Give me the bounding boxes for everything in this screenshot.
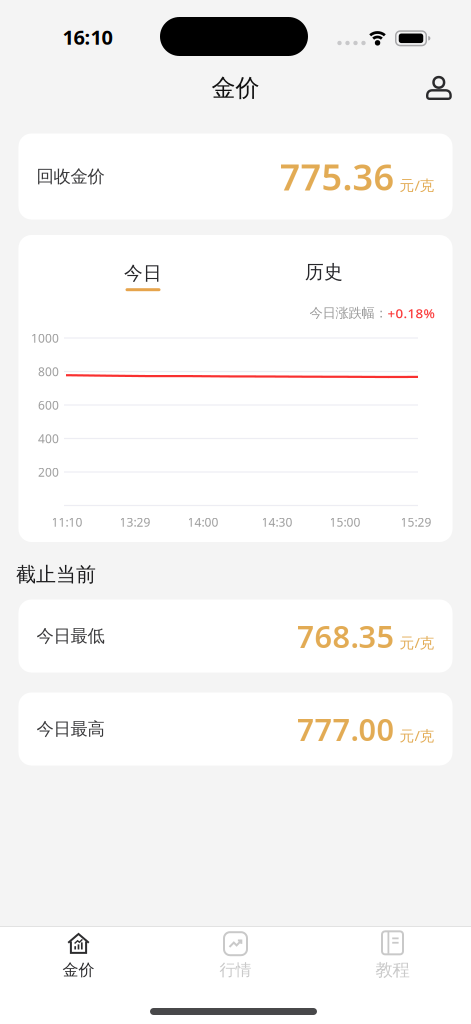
staticText: 元/克 <box>399 633 434 652</box>
staticText: 400 <box>38 430 59 446</box>
staticText: 13:29 <box>119 514 150 530</box>
staticText: 15:29 <box>400 514 431 530</box>
button[interactable]: 历史 <box>279 246 369 298</box>
button[interactable]: 今日 <box>98 250 188 302</box>
button[interactable]: 行情 <box>157 923 314 989</box>
staticText: 元/克 <box>399 175 434 195</box>
staticText: 回收金价 <box>36 166 104 187</box>
button[interactable]: 今日最高 <box>18 692 452 765</box>
staticText: 今日涨跌幅： <box>309 305 387 321</box>
staticText: +0.18% <box>387 304 434 322</box>
staticText: 14:00 <box>187 514 218 530</box>
staticText: 金价 <box>211 73 259 103</box>
staticText: 15:00 <box>329 514 360 530</box>
staticText: 11:10 <box>51 514 82 530</box>
staticText: 800 <box>38 363 59 379</box>
button[interactable] <box>419 65 459 105</box>
button[interactable]: 今日最低 <box>18 599 452 672</box>
staticText: 截止当前 <box>16 562 96 587</box>
staticText: 元/克 <box>399 726 434 745</box>
staticText: 今日最高 <box>36 718 104 740</box>
button[interactable]: 金价 <box>0 923 157 989</box>
button[interactable]: 回收金价 <box>18 133 452 219</box>
staticText: 16:10 <box>62 24 112 50</box>
staticText: 历史 <box>305 260 343 283</box>
staticText: 777.00 <box>296 709 394 749</box>
staticText: 14:30 <box>261 514 292 530</box>
staticText: 600 <box>38 397 59 413</box>
staticText: 教程 <box>375 959 409 981</box>
staticText: 今日 <box>124 262 162 285</box>
staticText: 200 <box>38 464 59 480</box>
staticText: 1000 <box>31 330 59 346</box>
staticText: 金价 <box>62 960 94 980</box>
staticText: 今日最低 <box>36 625 104 647</box>
button[interactable]: 教程 <box>314 923 471 989</box>
staticText: 行情 <box>219 960 251 980</box>
staticText: 768.35 <box>296 616 394 656</box>
staticText: 775.36 <box>279 153 394 200</box>
